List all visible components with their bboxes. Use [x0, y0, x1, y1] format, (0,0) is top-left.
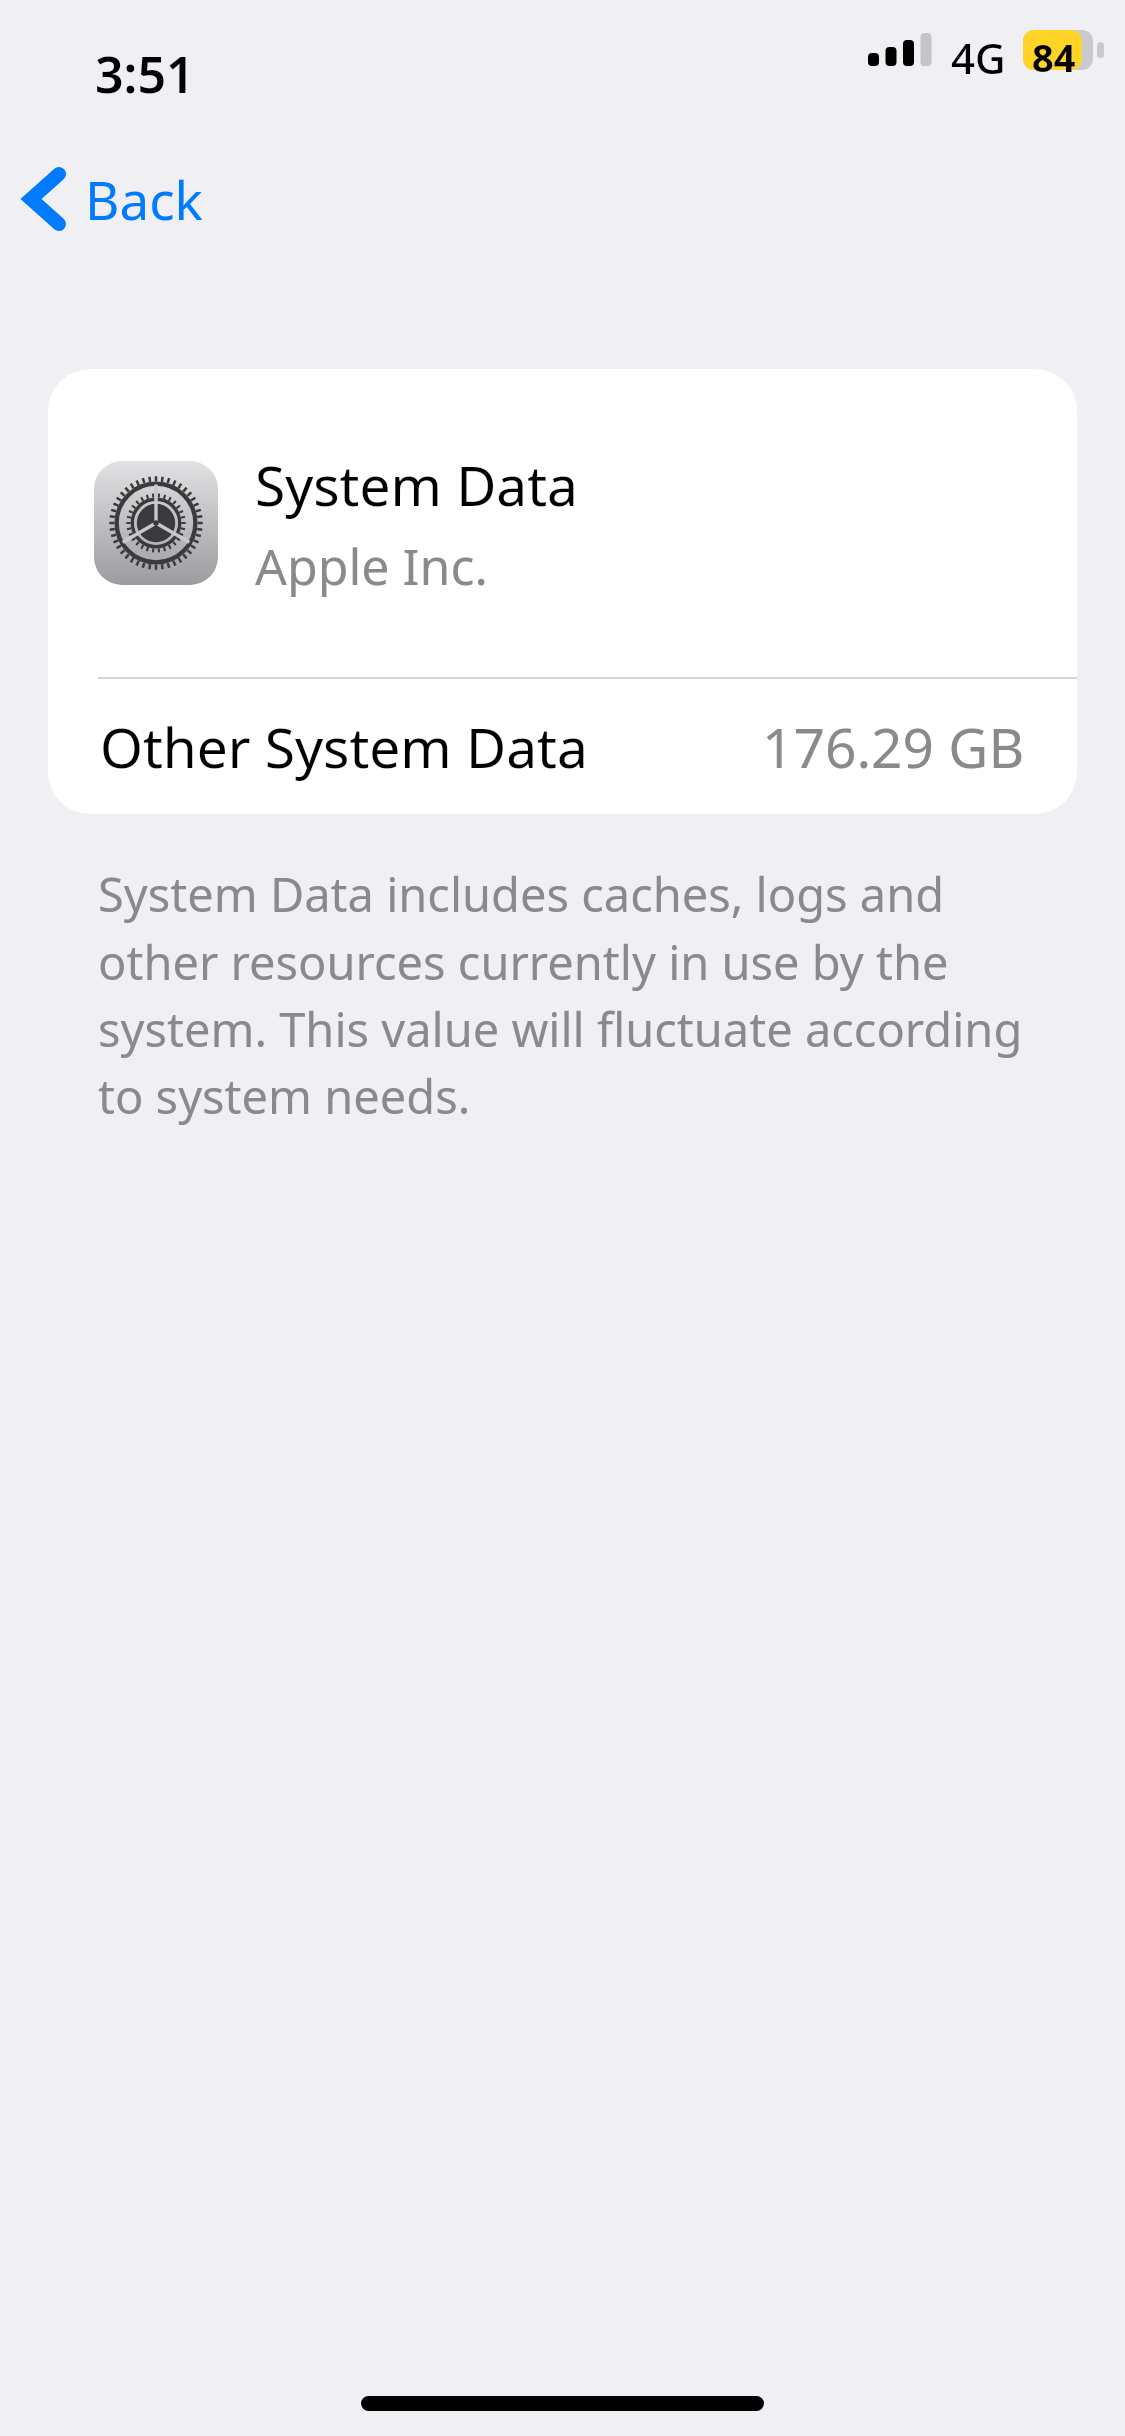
- staticText: Back: [85, 163, 203, 235]
- staticText: System Data: [255, 447, 578, 522]
- staticText: 4G: [951, 29, 1006, 86]
- staticText: System Data includes caches, logs and ot…: [98, 862, 1038, 1127]
- staticText: Apple Inc.: [255, 532, 488, 600]
- staticText: 84: [1032, 31, 1076, 83]
- button[interactable]: Back: [14, 155, 227, 243]
- staticText: Other System Data: [100, 709, 588, 784]
- button[interactable]: System Data: [48, 369, 1077, 677]
- button[interactable]: Other System Data: [48, 679, 1077, 814]
- staticText: 176.29 GB: [762, 709, 1025, 784]
- staticText: 3:51: [95, 40, 195, 108]
